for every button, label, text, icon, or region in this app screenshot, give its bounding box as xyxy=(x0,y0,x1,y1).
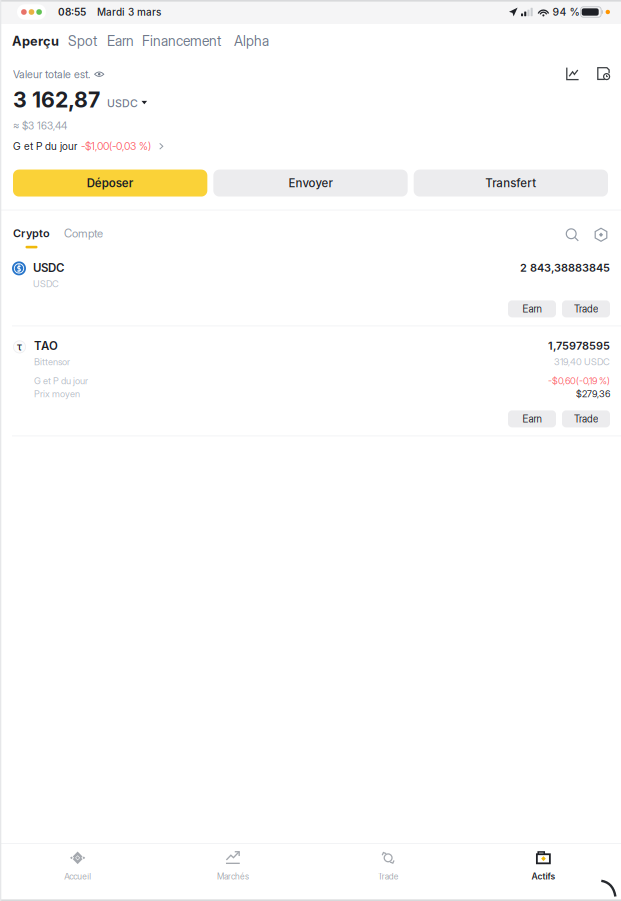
staticText: 08:55 xyxy=(58,6,86,18)
staticText: Earn xyxy=(522,303,541,315)
button[interactable]: Actifs xyxy=(466,844,621,888)
button[interactable]: Trade xyxy=(562,300,610,317)
button[interactable]: USDC xyxy=(0,259,621,325)
button[interactable]: Rechercher xyxy=(565,228,579,242)
staticText: Trade xyxy=(378,871,399,882)
button[interactable]: Earn xyxy=(508,410,556,427)
button[interactable]: Envoyer xyxy=(213,170,408,197)
button[interactable]: τ xyxy=(0,326,621,435)
staticText: Actifs xyxy=(531,871,555,882)
button[interactable]: Historique xyxy=(597,67,610,80)
staticText: ≈ $3 163,44 xyxy=(13,120,67,132)
staticText: G et P du jour xyxy=(34,375,88,386)
staticText: Déposer xyxy=(87,176,134,190)
staticText: 319,40 USDC xyxy=(554,356,610,367)
staticText: Accueil xyxy=(64,871,91,882)
staticText: Compte xyxy=(64,227,103,240)
staticText: -$1,00(-0,03 %) xyxy=(81,140,151,153)
button[interactable]: Aperçu xyxy=(12,33,59,49)
staticText: Crypto xyxy=(13,227,50,240)
staticText: 3 162,87 xyxy=(13,87,100,113)
staticText: Transfert xyxy=(485,176,536,190)
staticText: Marchés xyxy=(217,871,249,882)
button[interactable]: Trade xyxy=(562,410,610,427)
button[interactable]: Earn xyxy=(508,300,556,317)
staticText: Valeur totale est. xyxy=(13,68,90,81)
staticText: Trade xyxy=(574,303,598,315)
button[interactable]: Earn xyxy=(97,33,134,49)
staticText: Trade xyxy=(574,413,598,425)
staticText: Earn xyxy=(107,33,134,49)
staticText: Prix moyen xyxy=(34,388,80,399)
staticText: TAO xyxy=(34,339,58,353)
staticText: USDC xyxy=(33,261,64,275)
staticText: Bittensor xyxy=(34,356,70,367)
staticText: $279,36 xyxy=(576,388,610,399)
staticText: USDC xyxy=(33,278,59,289)
staticText: 94 % xyxy=(553,6,580,18)
staticText: -$0,60(-0,19 %) xyxy=(548,375,610,386)
staticText: 1,75978595 xyxy=(548,339,610,352)
button[interactable]: Spot xyxy=(59,33,97,49)
staticText: Alpha xyxy=(234,33,269,49)
button[interactable]: Compte xyxy=(50,227,103,240)
staticText: G et P du jour xyxy=(13,140,77,153)
staticText: Financement xyxy=(142,33,221,49)
button[interactable]: Déposer xyxy=(13,170,207,197)
button[interactable]: Crypto xyxy=(13,227,50,248)
staticText: Mardi 3 mars xyxy=(97,6,161,18)
button[interactable]: Accueil xyxy=(0,844,155,888)
staticText: Earn xyxy=(522,413,541,425)
staticText: 2 843,38883845 xyxy=(520,261,610,274)
staticText: Envoyer xyxy=(288,176,332,190)
button[interactable]: Transfert xyxy=(414,170,608,197)
button[interactable]: Trade xyxy=(310,844,466,888)
button[interactable]: Marchés xyxy=(155,844,310,888)
button[interactable]: Financement xyxy=(134,33,221,49)
button[interactable]: Graphique xyxy=(566,67,579,80)
staticText: Aperçu xyxy=(12,33,59,49)
button[interactable]: Filtrer xyxy=(594,228,608,242)
staticText: Spot xyxy=(68,33,97,49)
staticText: τ xyxy=(17,341,22,353)
button[interactable]: Alpha xyxy=(221,33,269,49)
staticText: USDC xyxy=(107,97,138,110)
